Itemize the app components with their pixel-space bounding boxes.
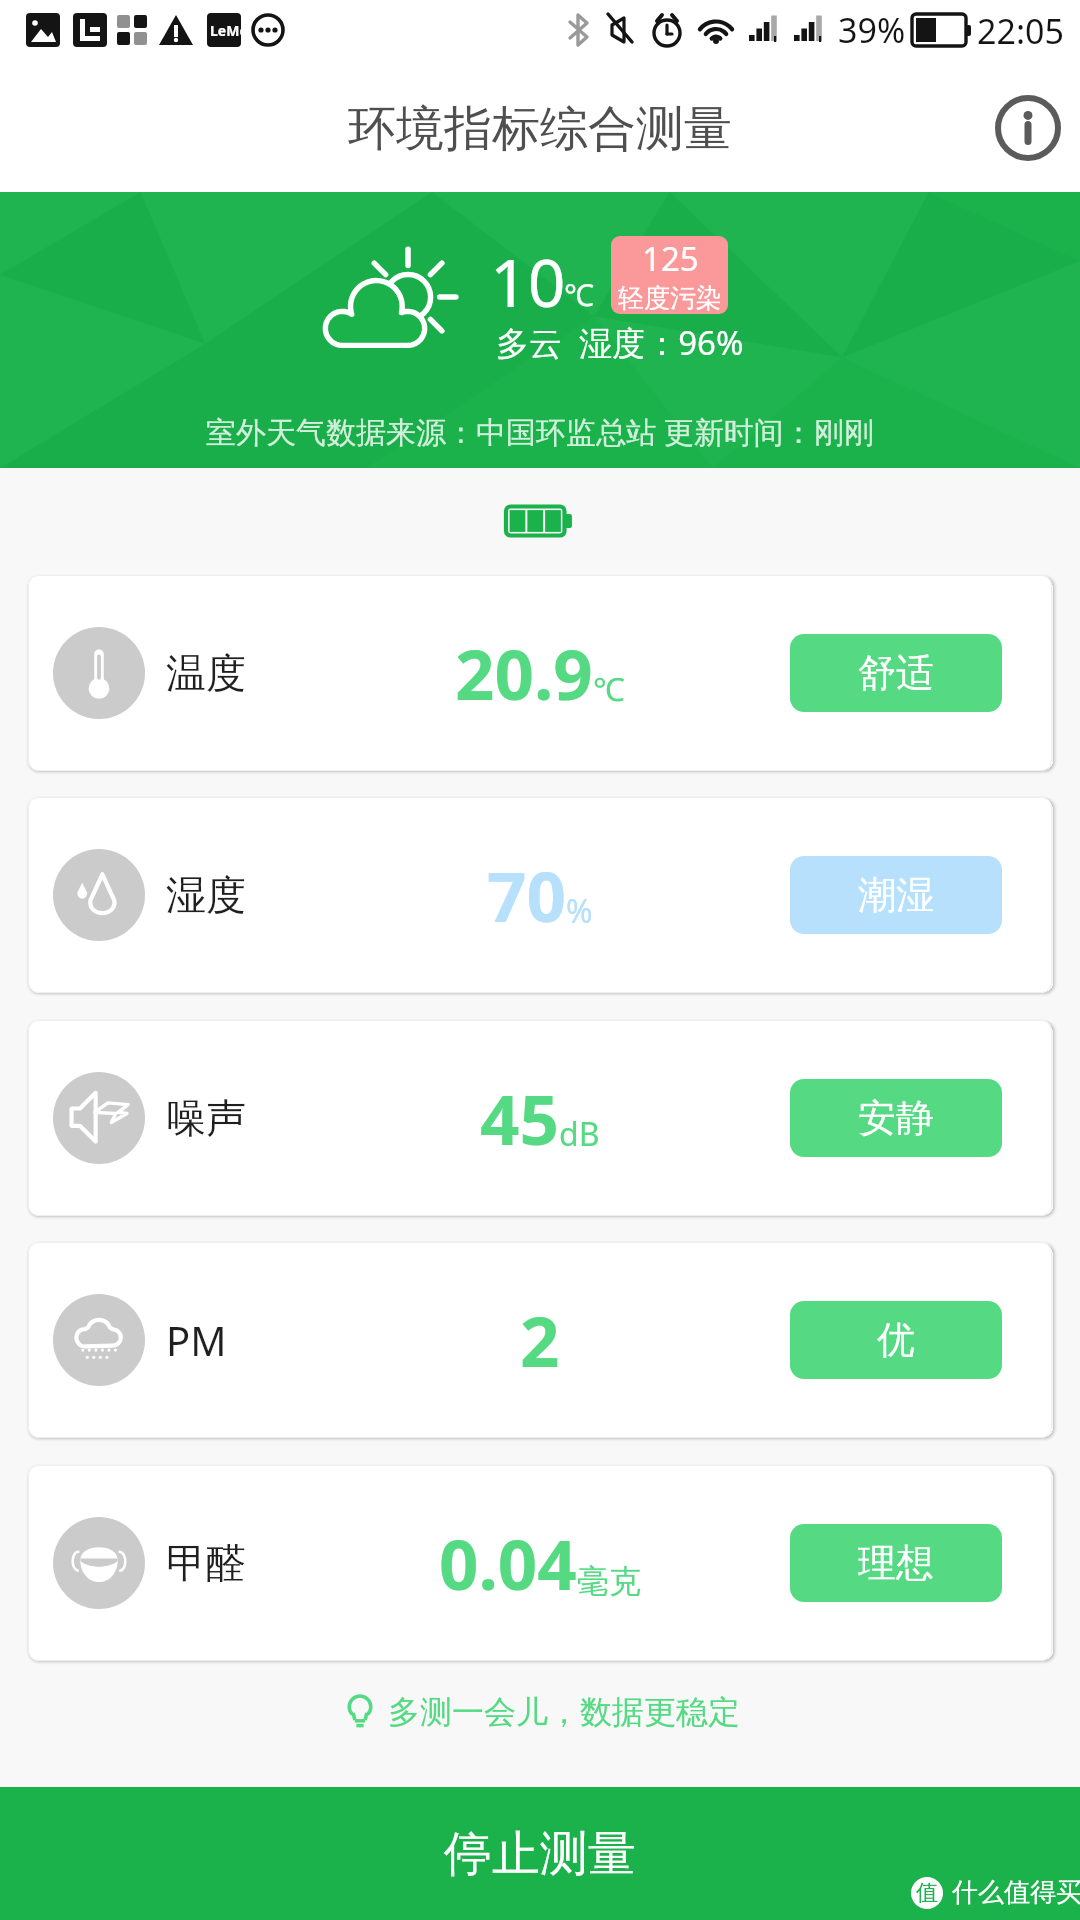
staticText: 0.04	[439, 1516, 577, 1610]
staticText: 20.9	[455, 626, 593, 720]
staticText: 轻度污染	[618, 282, 722, 314]
staticText: 毫克	[577, 1561, 641, 1601]
staticText: ℃	[593, 667, 625, 711]
button[interactable]: 舒适	[790, 634, 1002, 712]
button[interactable]: 湿度	[28, 797, 1052, 993]
staticText: 停止测量	[444, 1824, 636, 1884]
staticText: 舒适	[858, 649, 934, 697]
staticText: 潮湿	[858, 871, 934, 919]
staticText: 室外天气数据来源：中国环监总站 更新时间：刚刚	[206, 411, 874, 452]
staticText: 温度	[166, 648, 246, 698]
button[interactable]: PM	[28, 1242, 1052, 1438]
staticText: 39%	[838, 7, 906, 53]
button[interactable]: 停止测量	[0, 1787, 1080, 1920]
staticText: 10	[490, 236, 566, 326]
staticText: 湿度	[166, 870, 246, 920]
staticText: 理想	[858, 1539, 934, 1587]
staticText: 甲醛	[166, 1538, 246, 1588]
staticText: 环境指标综合测量	[348, 99, 732, 159]
staticText: dB	[559, 1112, 600, 1156]
button[interactable]: 噪声	[28, 1020, 1052, 1216]
button[interactable]: 甲醛	[28, 1465, 1052, 1661]
staticText: 2	[520, 1293, 560, 1387]
button[interactable]: 理想	[790, 1524, 1002, 1602]
button[interactable]: 潮湿	[790, 856, 1002, 934]
button[interactable]: Info	[986, 86, 1070, 170]
staticText: 安静	[858, 1094, 934, 1142]
staticText: %	[566, 889, 593, 933]
button[interactable]: 安静	[790, 1079, 1002, 1157]
staticText: ℃	[564, 274, 594, 315]
button[interactable]: 优	[790, 1301, 1002, 1379]
staticText: 125	[642, 236, 699, 281]
staticText: 噪声	[166, 1093, 246, 1143]
button[interactable]: 温度	[28, 575, 1052, 771]
staticText: LeMe	[210, 21, 248, 40]
staticText: 优	[877, 1316, 915, 1364]
staticText: 多测一会儿，数据更稳定	[388, 1692, 740, 1732]
staticText: 多云 湿度：96%	[496, 320, 744, 365]
staticText: 70	[487, 848, 566, 942]
staticText: 45	[480, 1071, 559, 1165]
staticText: 什么值得买	[952, 1876, 1080, 1909]
staticText: PM	[166, 1313, 227, 1367]
staticText: 值	[916, 1879, 938, 1907]
staticText: 22:05	[977, 8, 1064, 54]
